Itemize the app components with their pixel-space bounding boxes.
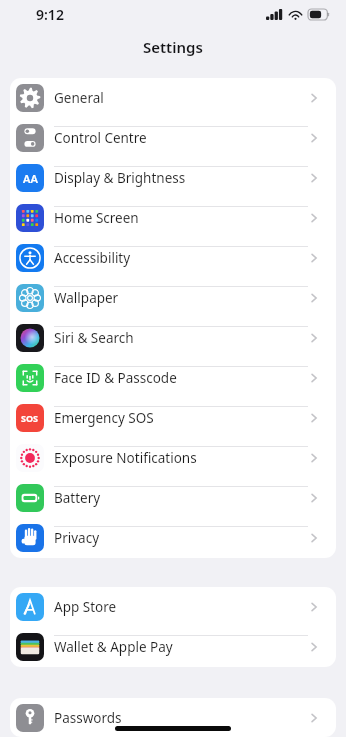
button[interactable]: Siri & Search xyxy=(10,318,336,358)
staticText: App Store xyxy=(54,598,117,616)
staticText: Settings xyxy=(143,37,203,57)
staticText: Exposure Notifications xyxy=(54,449,197,467)
button[interactable]: Face ID & Passcode xyxy=(10,358,336,398)
staticText: Control Centre xyxy=(54,129,147,147)
staticText: Siri & Search xyxy=(54,329,134,347)
staticText: Face ID & Passcode xyxy=(54,369,177,387)
button[interactable]: AA xyxy=(10,158,336,198)
button[interactable]: Home Screen xyxy=(10,198,336,238)
button[interactable]: SOS xyxy=(10,398,336,438)
staticText: Privacy xyxy=(54,529,100,547)
button[interactable]: Exposure Notifications xyxy=(10,438,336,478)
staticText: Emergency SOS xyxy=(54,409,154,427)
button[interactable]: Control Centre xyxy=(10,118,336,158)
staticText: 9:12 xyxy=(36,5,64,24)
staticText: Wallpaper xyxy=(54,289,119,307)
button[interactable]: General xyxy=(10,78,336,118)
button[interactable]: Passwords xyxy=(10,698,336,737)
button[interactable]: Accessibility xyxy=(10,238,336,278)
staticText: Accessibility xyxy=(54,249,131,267)
button[interactable]: Wallpaper xyxy=(10,278,336,318)
staticText: Home Screen xyxy=(54,209,139,227)
button[interactable]: Wallet & Apple Pay xyxy=(10,627,336,667)
staticText: SOS xyxy=(21,412,39,424)
button[interactable]: App Store xyxy=(10,587,336,627)
staticText: Passwords xyxy=(54,709,122,727)
staticText: AA xyxy=(23,171,38,186)
staticText: Wallet & Apple Pay xyxy=(54,638,173,656)
staticText: Battery xyxy=(54,489,101,507)
button[interactable]: Privacy xyxy=(10,518,336,558)
button[interactable]: Battery xyxy=(10,478,336,518)
staticText: Display & Brightness xyxy=(54,169,186,187)
staticText: General xyxy=(54,89,104,107)
